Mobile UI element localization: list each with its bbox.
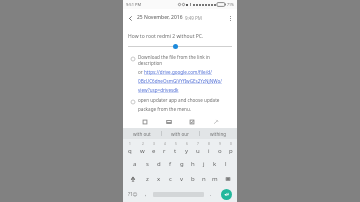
staticText: , [145,191,147,198]
staticText: with our [171,131,190,137]
staticText: r [163,147,166,155]
button[interactable]: a [129,157,141,170]
staticText: or [138,69,144,75]
staticText: q [128,147,132,155]
button[interactable]: ?1☺ [124,188,141,200]
button[interactable]: 4 [159,142,170,155]
staticText: o [218,147,222,155]
button[interactable]: Enter [221,189,232,200]
staticText: t [174,147,177,155]
button[interactable]: c [165,172,176,185]
button[interactable]: with our [162,128,199,139]
button[interactable]: 6 [181,142,192,155]
button[interactable]: withing [200,128,237,139]
staticText: 5 [175,142,177,146]
staticText: with out [133,131,151,137]
staticText: f [169,160,172,168]
button[interactable]: More options [223,11,237,25]
button[interactable]: with out [123,128,161,139]
staticText: 4 [164,142,166,146]
button[interactable]: 3 [148,142,159,155]
button[interactable]: Checklist item [128,97,137,106]
button[interactable]: k [209,157,220,170]
button[interactable]: 7 [192,142,203,155]
staticText: ?1☺ [128,191,138,197]
staticText: m [212,175,218,183]
staticText: 7 [197,142,199,146]
staticText: z [146,175,149,183]
button[interactable]: Text format [138,115,151,128]
staticText: v [180,175,184,183]
staticText: 8 [208,142,210,146]
staticText: 71% [227,2,234,7]
staticText: view?usp=drivesdk [138,87,179,93]
button[interactable]: d [153,157,165,170]
staticText: w [140,147,145,155]
staticText: 9 [219,142,221,146]
button[interactable]: Checklist item [128,54,137,63]
button[interactable]: Shift [124,172,141,185]
staticText: s [146,160,149,168]
staticText: 6 [186,142,188,146]
staticText: 0 [230,142,232,146]
staticText: x [157,175,161,183]
staticText: j [203,160,205,168]
staticText: withing [210,131,227,137]
button[interactable]: v [176,172,187,185]
staticText: d [157,160,161,168]
staticText: . [210,191,212,198]
button[interactable]: h [187,157,198,170]
button[interactable]: m [209,172,220,185]
staticText: 25 November, 2016 [137,14,183,21]
staticText: 1 [129,142,131,146]
button[interactable]: x [153,172,165,185]
staticText: 2 [142,142,144,146]
staticText: https://drive.google.com/file/d/ [144,69,212,75]
button[interactable]: 1 [124,142,136,155]
staticText: h [191,160,195,168]
button[interactable]: s [141,157,153,170]
button[interactable]: l [220,157,231,170]
button[interactable]: b [187,172,198,185]
button[interactable]: 2 [136,142,148,155]
button[interactable]: . [206,188,216,200]
button[interactable]: 5 [170,142,181,155]
staticText: i [208,147,210,155]
staticText: How to root redmi 2 without PC. [128,33,204,40]
staticText: k [213,160,217,168]
button[interactable]: Backspace [220,172,236,185]
staticText: 0BzUC6dneOsmGiVYfIwGEs2YzNjNWo/ [138,78,222,84]
staticText: b [191,175,195,183]
staticText: open updater app and choose update [138,97,220,103]
button[interactable]: j [198,157,209,170]
staticText: Download the file from the link in descr… [138,54,232,66]
staticText: c [169,175,172,183]
button[interactable]: n [198,172,209,185]
staticText: 3 [153,142,155,146]
staticText: u [196,147,200,155]
staticText: y [185,147,189,155]
button[interactable]: Undo [209,115,222,128]
staticText: e [152,147,156,155]
button[interactable]: 0 [225,142,236,155]
staticText: a [133,160,137,168]
staticText: p [229,147,233,155]
staticText: l [225,160,227,168]
button[interactable]: Back [123,11,137,25]
button[interactable]: g [176,157,187,170]
staticText: n [202,175,206,183]
button[interactable]: Insert image [162,115,175,128]
button[interactable]: z [141,172,153,185]
staticText: package from the menu. [138,106,191,112]
button[interactable]: Checklist [185,115,198,128]
staticText: g [180,160,184,168]
staticText: 9:49 PM [185,15,202,21]
button[interactable]: f [165,157,176,170]
button[interactable]: 8 [203,142,214,155]
staticText: 9:51 PM [126,2,142,7]
button[interactable]: , [141,188,151,200]
button[interactable]: 9 [214,142,225,155]
